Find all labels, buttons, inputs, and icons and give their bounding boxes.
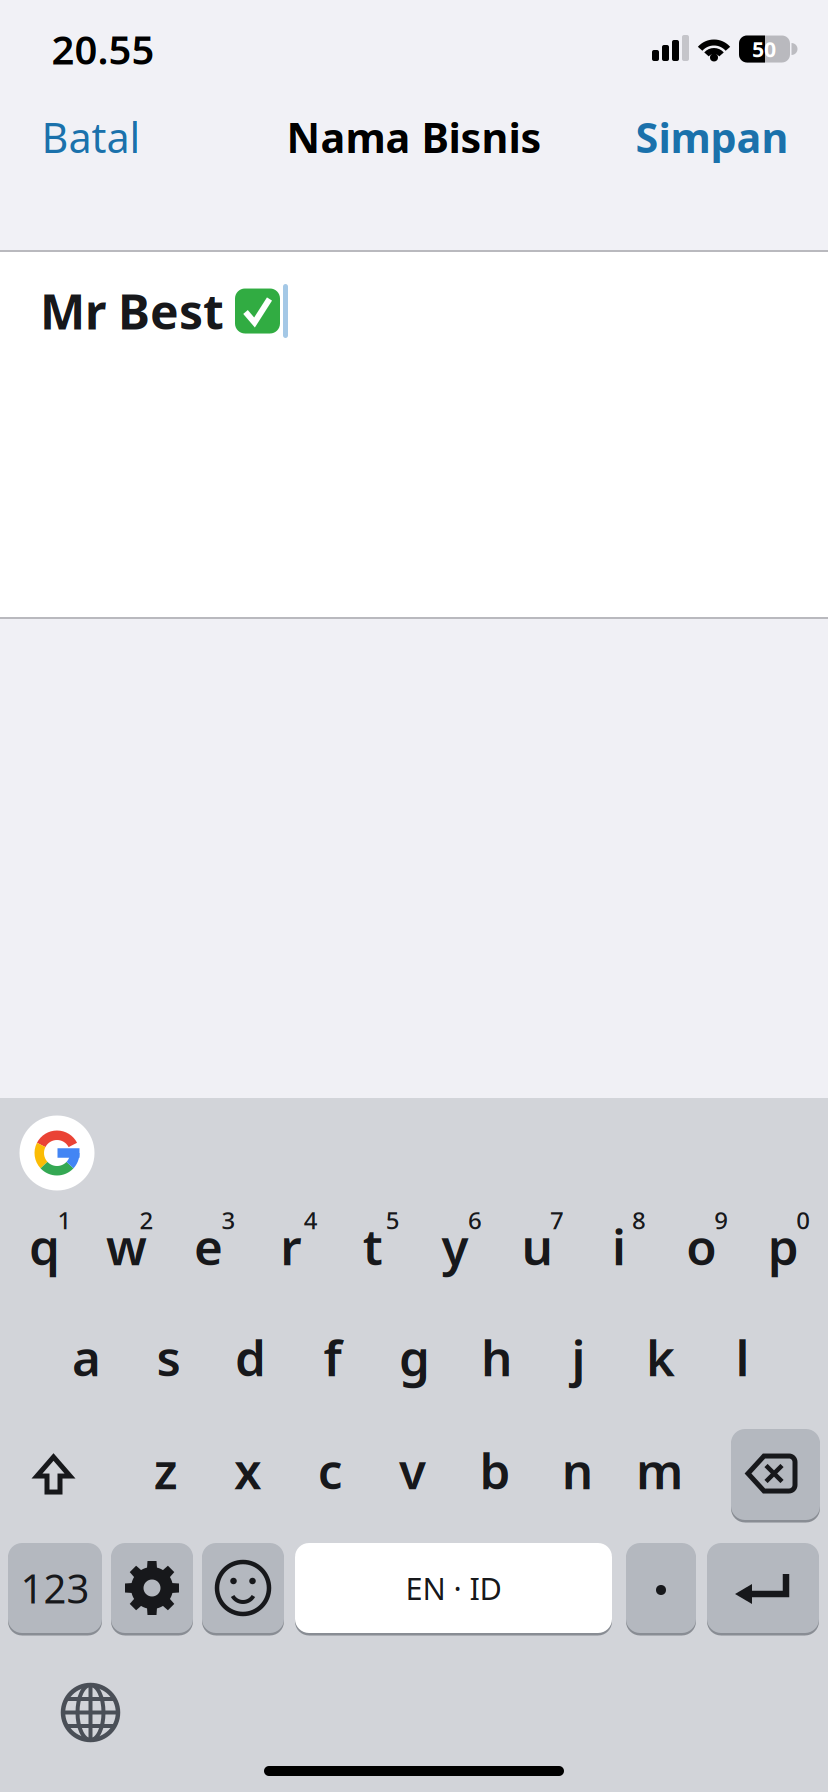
button[interactable]: n bbox=[536, 1424, 618, 1515]
staticText: 4 bbox=[304, 1204, 318, 1236]
button[interactable]: EN · ID bbox=[295, 1543, 612, 1633]
button[interactable]: k bbox=[619, 1311, 701, 1402]
button[interactable]: p bbox=[742, 1200, 824, 1291]
staticText: 3 bbox=[222, 1204, 236, 1236]
button[interactable] bbox=[202, 1543, 284, 1633]
button[interactable]: t bbox=[332, 1200, 414, 1291]
button[interactable]: e bbox=[168, 1200, 250, 1291]
button[interactable]: g bbox=[373, 1311, 455, 1402]
staticText: 5 bbox=[386, 1204, 400, 1236]
staticText: i bbox=[612, 1213, 626, 1279]
button[interactable]: i bbox=[578, 1200, 660, 1291]
button[interactable] bbox=[50, 1672, 130, 1752]
staticText: o bbox=[686, 1213, 716, 1279]
button[interactable]: w bbox=[85, 1200, 167, 1291]
staticText: p bbox=[768, 1213, 799, 1279]
staticText: 2 bbox=[139, 1204, 153, 1236]
staticText: w bbox=[106, 1213, 147, 1279]
button[interactable]: b bbox=[454, 1424, 536, 1515]
staticText: j bbox=[571, 1324, 585, 1390]
staticText: Batal bbox=[41, 110, 140, 164]
button[interactable]: q bbox=[3, 1200, 85, 1291]
button[interactable] bbox=[19, 1115, 94, 1190]
button[interactable]: j bbox=[537, 1311, 619, 1402]
button[interactable]: z bbox=[125, 1424, 207, 1515]
staticText: Mr Best bbox=[40, 279, 224, 343]
button[interactable]: f bbox=[291, 1311, 373, 1402]
staticText: a bbox=[72, 1324, 101, 1390]
staticText: h bbox=[481, 1324, 512, 1390]
staticText: z bbox=[154, 1437, 178, 1503]
button[interactable] bbox=[707, 1543, 819, 1633]
staticText: d bbox=[235, 1324, 266, 1390]
staticText: l bbox=[735, 1324, 749, 1390]
staticText: 7 bbox=[550, 1204, 564, 1236]
staticText: c bbox=[318, 1437, 343, 1503]
staticText: 8 bbox=[632, 1204, 646, 1236]
staticText: r bbox=[280, 1213, 301, 1279]
button[interactable]: a bbox=[45, 1311, 127, 1402]
staticText: s bbox=[156, 1324, 180, 1390]
button[interactable]: c bbox=[289, 1424, 371, 1515]
button[interactable]: d bbox=[209, 1311, 291, 1402]
button[interactable]: Batal bbox=[41, 110, 140, 164]
staticText: e bbox=[194, 1213, 223, 1279]
staticText: v bbox=[399, 1437, 426, 1503]
button[interactable]: l bbox=[701, 1311, 783, 1402]
button[interactable]: x bbox=[207, 1424, 289, 1515]
button[interactable]: Mr Best bbox=[40, 251, 828, 371]
button[interactable]: m bbox=[618, 1424, 700, 1515]
button[interactable] bbox=[731, 1429, 820, 1520]
staticText: t bbox=[363, 1213, 383, 1279]
staticText: f bbox=[323, 1324, 341, 1390]
staticText: u bbox=[521, 1213, 552, 1279]
staticText: m bbox=[636, 1437, 683, 1503]
staticText: q bbox=[29, 1213, 60, 1279]
button[interactable]: r bbox=[250, 1200, 332, 1291]
staticText: n bbox=[562, 1437, 593, 1503]
staticText: x bbox=[234, 1437, 262, 1503]
staticText: g bbox=[399, 1324, 430, 1390]
staticText: 0 bbox=[796, 1204, 810, 1236]
staticText: y bbox=[441, 1213, 468, 1279]
button[interactable]: 123 bbox=[8, 1543, 102, 1633]
button[interactable] bbox=[12, 1429, 94, 1520]
staticText: 9 bbox=[714, 1204, 728, 1236]
staticText: b bbox=[479, 1437, 510, 1503]
button[interactable]: v bbox=[372, 1424, 454, 1515]
button[interactable] bbox=[626, 1543, 696, 1633]
staticText: 6 bbox=[468, 1204, 482, 1236]
staticText: 50 bbox=[752, 35, 776, 63]
button[interactable]: y bbox=[414, 1200, 496, 1291]
staticText: EN · ID bbox=[405, 1568, 501, 1608]
button[interactable]: Simpan bbox=[635, 110, 788, 164]
button[interactable]: u bbox=[496, 1200, 578, 1291]
button[interactable] bbox=[111, 1543, 193, 1633]
button[interactable]: h bbox=[455, 1311, 537, 1402]
staticText: Nama Bisnis bbox=[286, 110, 541, 164]
staticText: 1 bbox=[57, 1204, 71, 1236]
button[interactable]: s bbox=[127, 1311, 209, 1402]
staticText: k bbox=[646, 1324, 675, 1390]
staticText: 123 bbox=[20, 1561, 89, 1614]
button[interactable]: o bbox=[660, 1200, 742, 1291]
staticText: 20.55 bbox=[51, 22, 154, 75]
staticText: Simpan bbox=[635, 110, 788, 164]
